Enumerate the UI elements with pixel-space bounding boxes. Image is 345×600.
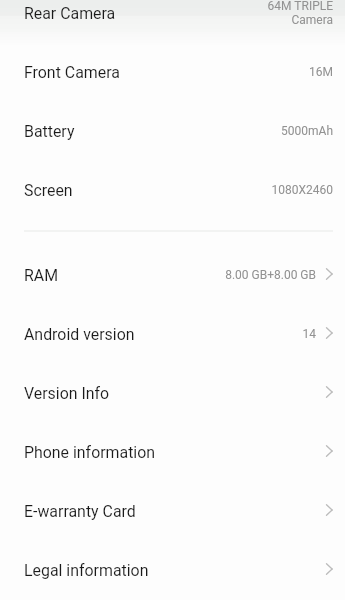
- button[interactable]: Front Camera: [0, 43, 345, 102]
- staticText: Legal information: [24, 561, 149, 580]
- other: Open Legal information: [326, 563, 333, 575]
- staticText: Front Camera: [24, 63, 120, 82]
- other: Open Version Info: [326, 386, 333, 398]
- staticText: Battery: [24, 122, 75, 141]
- button[interactable]: Screen: [0, 161, 345, 220]
- button[interactable]: Android version: [0, 305, 345, 364]
- other: Open Android version: [326, 327, 333, 339]
- staticText: Android version: [24, 325, 135, 344]
- button[interactable]: Phone information: [0, 423, 345, 482]
- other: Open Phone information: [326, 445, 333, 457]
- other: Open RAM: [326, 268, 333, 280]
- button[interactable]: E-warranty Card: [0, 482, 345, 541]
- staticText: 8.00 GB+8.00 GB: [225, 268, 316, 282]
- staticText: Screen: [24, 181, 73, 200]
- staticText: 5000mAh: [281, 124, 333, 138]
- button[interactable]: RAM: [0, 246, 345, 305]
- button[interactable]: Rear Camera: [0, 0, 345, 43]
- staticText: Phone information: [24, 443, 156, 462]
- staticText: Version Info: [24, 384, 110, 403]
- staticText: 16M: [309, 65, 333, 79]
- staticText: 14: [302, 327, 316, 341]
- button[interactable]: Battery: [0, 102, 345, 161]
- staticText: 64M TRIPLE: [267, 0, 333, 13]
- staticText: Camera: [291, 13, 333, 27]
- staticText: RAM: [24, 266, 59, 285]
- staticText: 1080X2460: [271, 183, 333, 197]
- button[interactable]: Legal information: [0, 541, 345, 600]
- staticText: Rear Camera: [24, 4, 116, 23]
- other: Open E-warranty Card: [326, 504, 333, 516]
- staticText: E-warranty Card: [24, 502, 136, 521]
- button[interactable]: Version Info: [0, 364, 345, 423]
